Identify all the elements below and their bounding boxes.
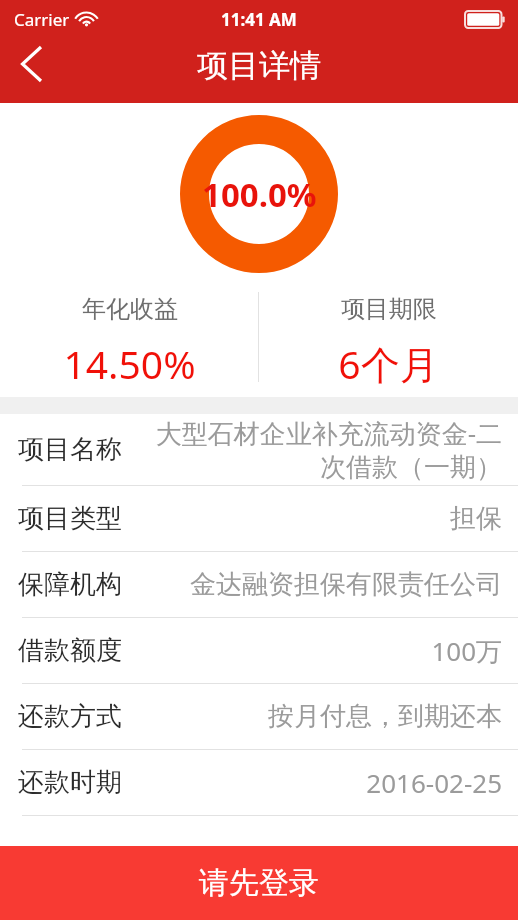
- staticText: 还款时期: [18, 766, 122, 799]
- staticText: 项目类型: [18, 502, 122, 535]
- staticText: 大型石材企业补充流动资金-二次借款（一期）: [144, 415, 502, 484]
- staticText: 金达融资担保有限责任公司: [144, 568, 502, 601]
- staticText: 担保: [144, 502, 502, 535]
- staticText: 借款额度: [18, 634, 122, 667]
- button[interactable]: 借款额度: [0, 618, 518, 684]
- button[interactable]: 还款时期: [0, 750, 518, 816]
- staticText: 还款方式: [18, 700, 122, 733]
- staticText: 2016-02-25: [144, 765, 502, 800]
- staticText: 项目名称: [18, 433, 122, 466]
- staticText: 项目期限: [341, 294, 437, 324]
- staticText: Carrier: [14, 8, 70, 31]
- staticText: 14.50%: [63, 337, 196, 390]
- staticText: 100万: [144, 633, 502, 669]
- button[interactable]: 保障机构: [0, 552, 518, 618]
- button[interactable]: 还款方式: [0, 684, 518, 750]
- staticText: 100.0%: [202, 172, 317, 217]
- staticText: 请先登录: [199, 864, 319, 902]
- staticText: 保障机构: [18, 568, 122, 601]
- staticText: 按月付息，到期还本: [144, 700, 502, 733]
- staticText: 6个月: [338, 337, 439, 390]
- button[interactable]: 项目名称: [0, 414, 518, 486]
- staticText: 年化收益: [82, 294, 178, 324]
- button[interactable]: 请先登录: [0, 846, 518, 920]
- staticText: 项目详情: [197, 46, 321, 85]
- button[interactable]: 项目类型: [0, 486, 518, 552]
- staticText: 11:41 AM: [221, 8, 297, 31]
- button[interactable]: Back: [0, 35, 62, 93]
